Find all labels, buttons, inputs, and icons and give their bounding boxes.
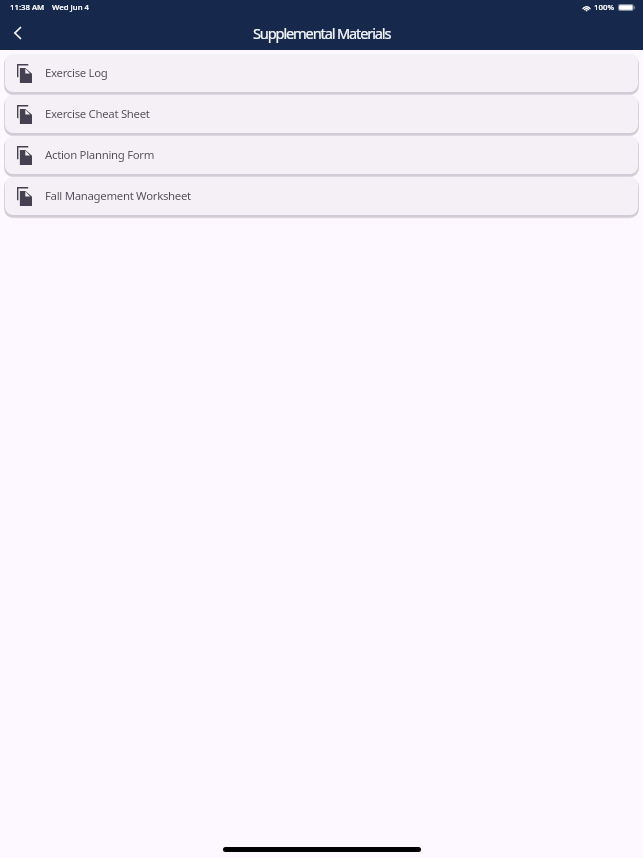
staticText: Action Planning Form xyxy=(45,147,155,163)
staticText: 11:38 AM xyxy=(10,2,45,13)
staticText: Exercise Log xyxy=(45,65,108,81)
button[interactable]: Action Planning Form xyxy=(5,136,638,174)
button[interactable]: Exercise Cheat Sheet xyxy=(5,95,638,133)
staticText: Wed Jun 4 xyxy=(52,2,90,13)
button[interactable]: Fall Management Worksheet xyxy=(5,177,638,215)
button[interactable]: Back xyxy=(0,16,34,50)
button[interactable]: Exercise Log xyxy=(5,54,638,92)
staticText: Exercise Cheat Sheet xyxy=(45,106,150,122)
staticText: Fall Management Worksheet xyxy=(45,188,191,204)
staticText: 100% xyxy=(594,2,615,13)
staticText: Supplemental Materials xyxy=(253,23,391,43)
